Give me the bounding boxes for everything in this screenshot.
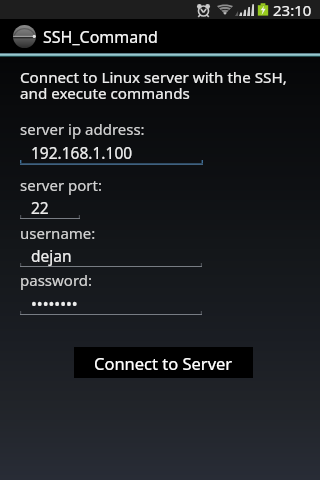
button[interactable]: •••••••• xyxy=(20,293,202,318)
staticText: SSH_Command xyxy=(43,26,158,48)
staticText: 23:10 xyxy=(273,0,312,19)
other: Signal strength xyxy=(235,4,254,16)
button[interactable]: Connect to Server xyxy=(74,347,253,378)
staticText: password: xyxy=(20,270,93,290)
other: Wi-Fi xyxy=(218,4,232,16)
staticText: username: xyxy=(20,223,96,243)
staticText: dejan xyxy=(31,245,72,266)
staticText: Connect to Server xyxy=(94,352,233,374)
staticText: 192.168.1.100 xyxy=(31,142,133,163)
button[interactable]: 22 xyxy=(20,197,80,222)
button[interactable]: dejan xyxy=(20,245,202,270)
staticText: •••••••• xyxy=(31,293,78,314)
staticText: Connect to Linux server with the SSH, an… xyxy=(20,67,287,104)
button[interactable]: 192.168.1.100 xyxy=(20,142,203,167)
staticText: 22 xyxy=(31,197,49,218)
other: Alarm set xyxy=(196,2,211,17)
staticText: server port: xyxy=(20,175,102,195)
staticText: server ip address: xyxy=(20,119,145,139)
other: Battery charging xyxy=(257,3,269,16)
